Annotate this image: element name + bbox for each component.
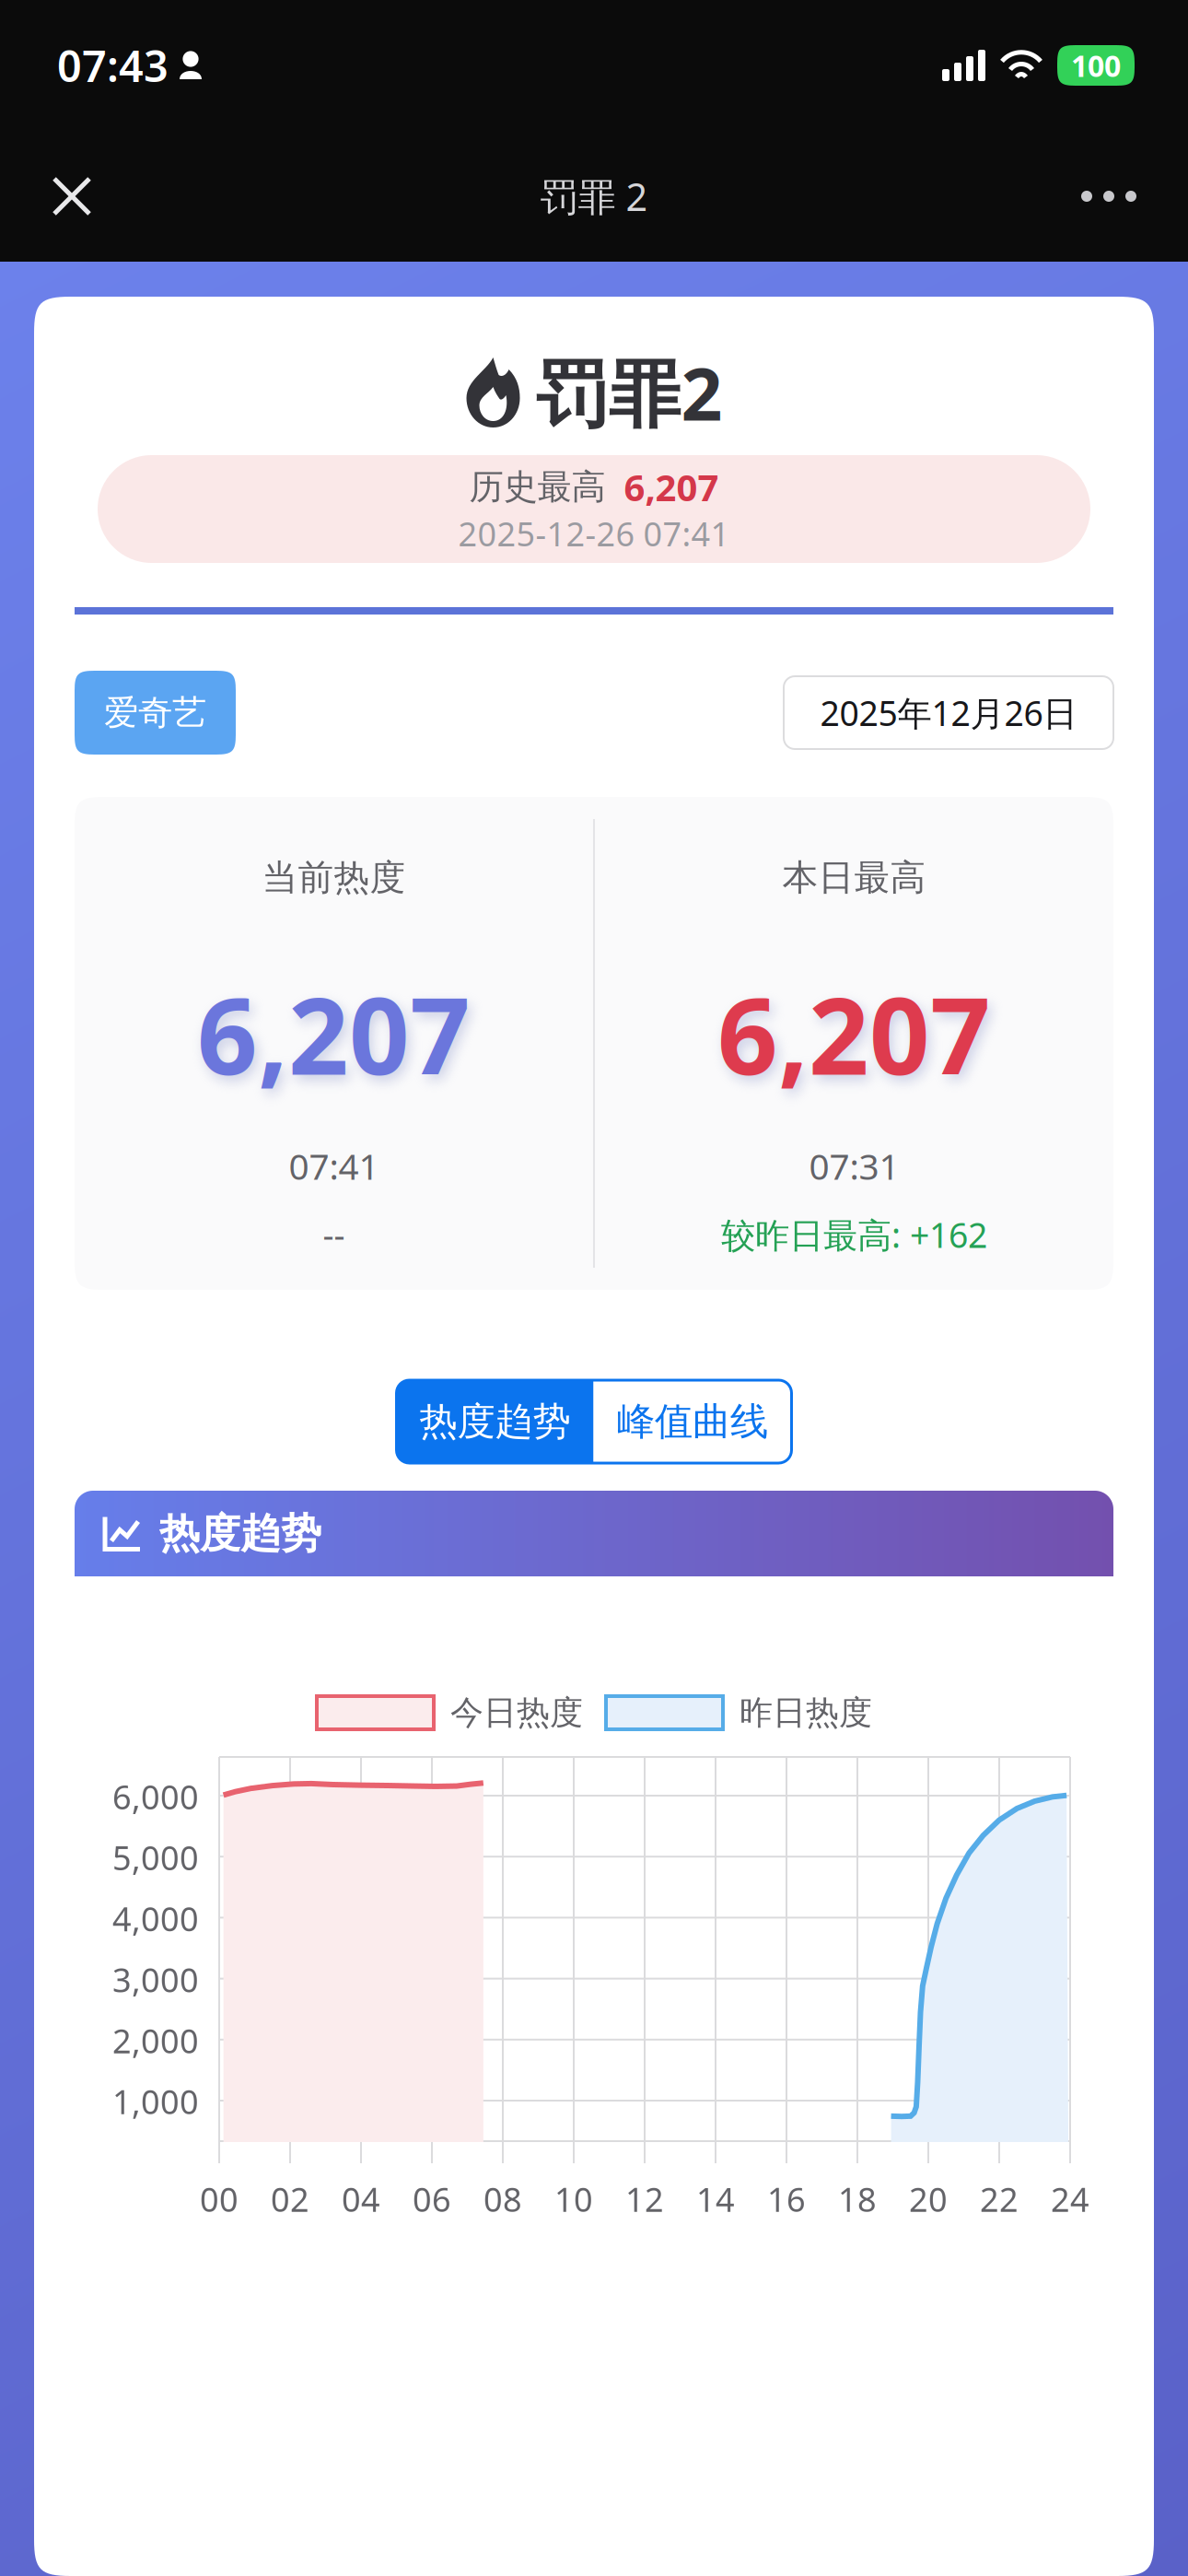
staticText: 07:43 (57, 37, 169, 94)
staticText: 06 (413, 2177, 451, 2221)
staticText: 04 (342, 2177, 380, 2221)
staticText: 02 (271, 2177, 309, 2221)
staticText: 爱奇艺 (104, 692, 206, 734)
staticText: 07:41 (289, 1142, 379, 1190)
staticText: 6,207 (197, 964, 471, 1104)
staticText: 罚罪 2 (540, 171, 648, 222)
staticText: 22 (980, 2177, 1019, 2221)
staticText: 峰值曲线 (617, 1398, 768, 1445)
staticText: 罚罪2 (536, 344, 722, 441)
button[interactable]: Close (33, 158, 111, 235)
button[interactable]: 2025年12月26日 (784, 676, 1113, 749)
staticText: 1,000 (112, 2079, 199, 2123)
staticText: -- (323, 1212, 345, 1257)
staticText: 10 (554, 2177, 593, 2221)
staticText: 3,000 (112, 1957, 199, 2001)
staticText: 5,000 (112, 1835, 199, 1879)
staticText: 历史最高 (469, 466, 606, 508)
staticText: 100 (1071, 46, 1121, 85)
staticText: 4,000 (112, 1896, 199, 1940)
staticText: 18 (838, 2177, 877, 2221)
staticText: 16 (767, 2177, 806, 2221)
staticText: 12 (625, 2177, 664, 2221)
staticText: 14 (696, 2177, 735, 2221)
staticText: 今日热度 (450, 1692, 583, 1733)
staticText: 较昨日最高: +162 (721, 1212, 987, 1257)
staticText: 00 (200, 2177, 239, 2221)
button[interactable]: 峰值曲线 (594, 1380, 792, 1463)
button[interactable]: 热度趋势 (396, 1380, 594, 1463)
button[interactable]: 爱奇艺 (75, 671, 236, 755)
staticText: 当前热度 (262, 856, 406, 899)
staticText: 20 (909, 2177, 948, 2221)
staticText: 本日最高 (782, 856, 926, 899)
staticText: 昨日热度 (740, 1692, 872, 1733)
staticText: 08 (483, 2177, 522, 2221)
staticText: 热度趋势 (419, 1398, 571, 1445)
staticText: 2025-12-26 07:41 (458, 512, 730, 556)
staticText: 24 (1051, 2177, 1089, 2221)
staticText: 2,000 (112, 2018, 199, 2062)
staticText: 2025年12月26日 (820, 690, 1077, 735)
staticText: 6,207 (624, 463, 719, 511)
staticText: 6,000 (112, 1774, 199, 1818)
button[interactable]: More (1063, 158, 1155, 235)
staticText: 热度趋势 (159, 1509, 321, 1558)
staticText: 6,207 (717, 964, 991, 1104)
staticText: 07:31 (809, 1142, 899, 1190)
